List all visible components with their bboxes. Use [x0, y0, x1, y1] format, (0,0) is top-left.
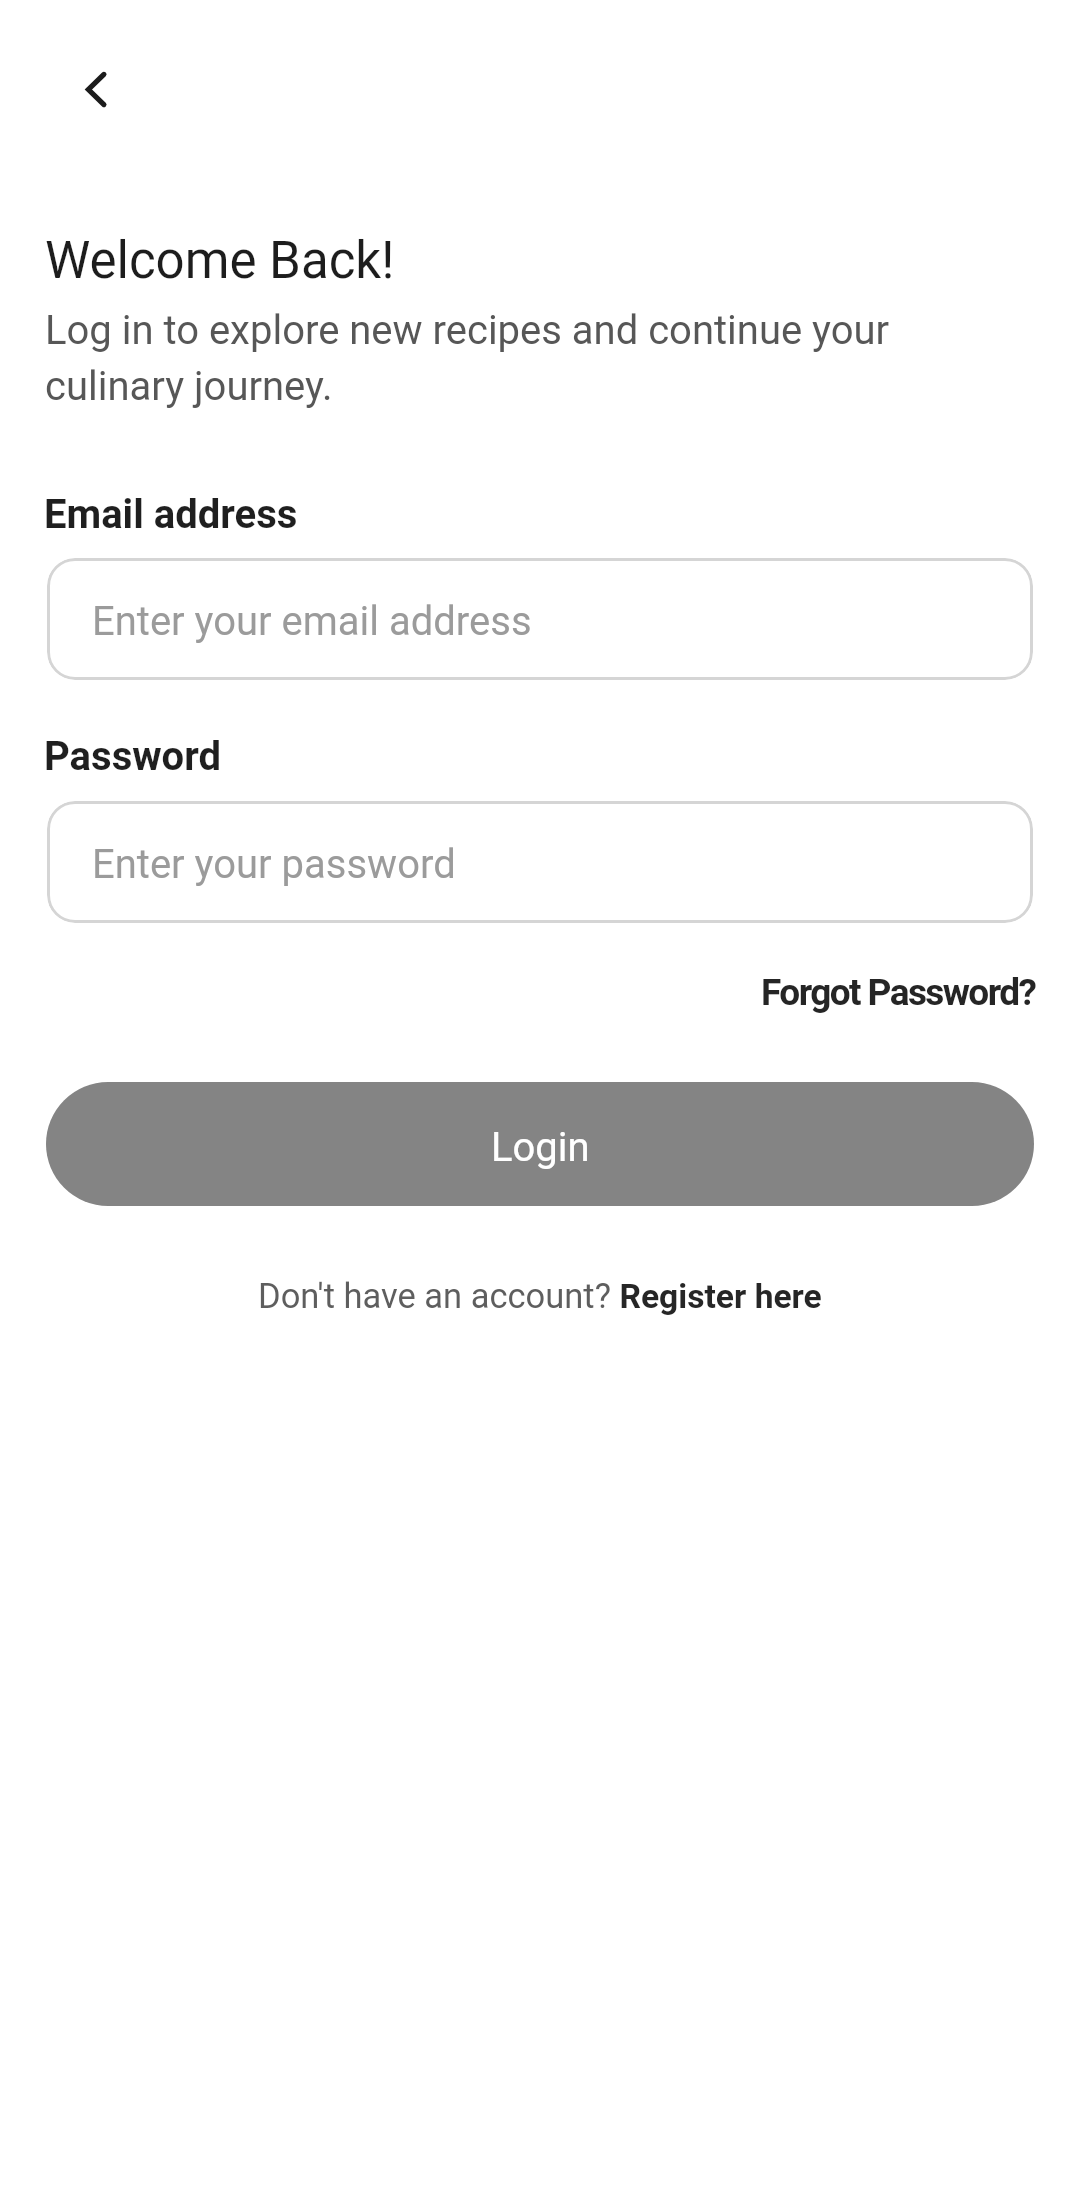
staticText: Enter your password [92, 841, 456, 888]
button[interactable]: Enter your password [47, 801, 1033, 923]
staticText: Welcome Back! [45, 231, 395, 291]
staticText: Enter your email address [92, 598, 532, 645]
button[interactable]: Forgot Password? [761, 971, 1036, 1014]
staticText: Log in to explore new recipes and contin… [45, 307, 890, 354]
button[interactable]: Enter your email address [47, 558, 1033, 680]
staticText: culinary journey. [45, 363, 333, 410]
staticText: Email address [44, 491, 298, 538]
button[interactable] [72, 66, 120, 114]
button[interactable]: Login [46, 1082, 1034, 1206]
button[interactable]: Don't have an account? Register here [258, 1276, 822, 1316]
staticText: Password [44, 733, 222, 780]
staticText: Login [491, 1124, 590, 1171]
